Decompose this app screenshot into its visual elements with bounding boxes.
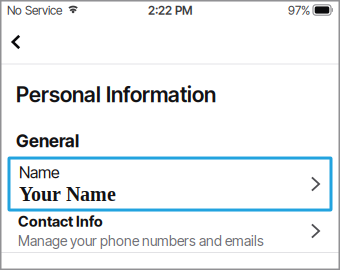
staticText: Your Name xyxy=(19,183,116,205)
staticText: Name xyxy=(19,163,60,182)
button[interactable]: Contact Info xyxy=(0,210,340,253)
staticText: 2:22 PM xyxy=(148,3,192,18)
staticText: Contact Info xyxy=(18,213,103,230)
staticText: General xyxy=(16,130,79,151)
staticText: 97% xyxy=(288,3,310,18)
button[interactable]: Name xyxy=(0,158,340,210)
staticText: No Service xyxy=(7,3,62,18)
button[interactable]: Back xyxy=(0,21,32,63)
staticText: Manage your phone numbers and emails xyxy=(18,232,264,249)
staticText: Personal Information xyxy=(16,82,216,107)
